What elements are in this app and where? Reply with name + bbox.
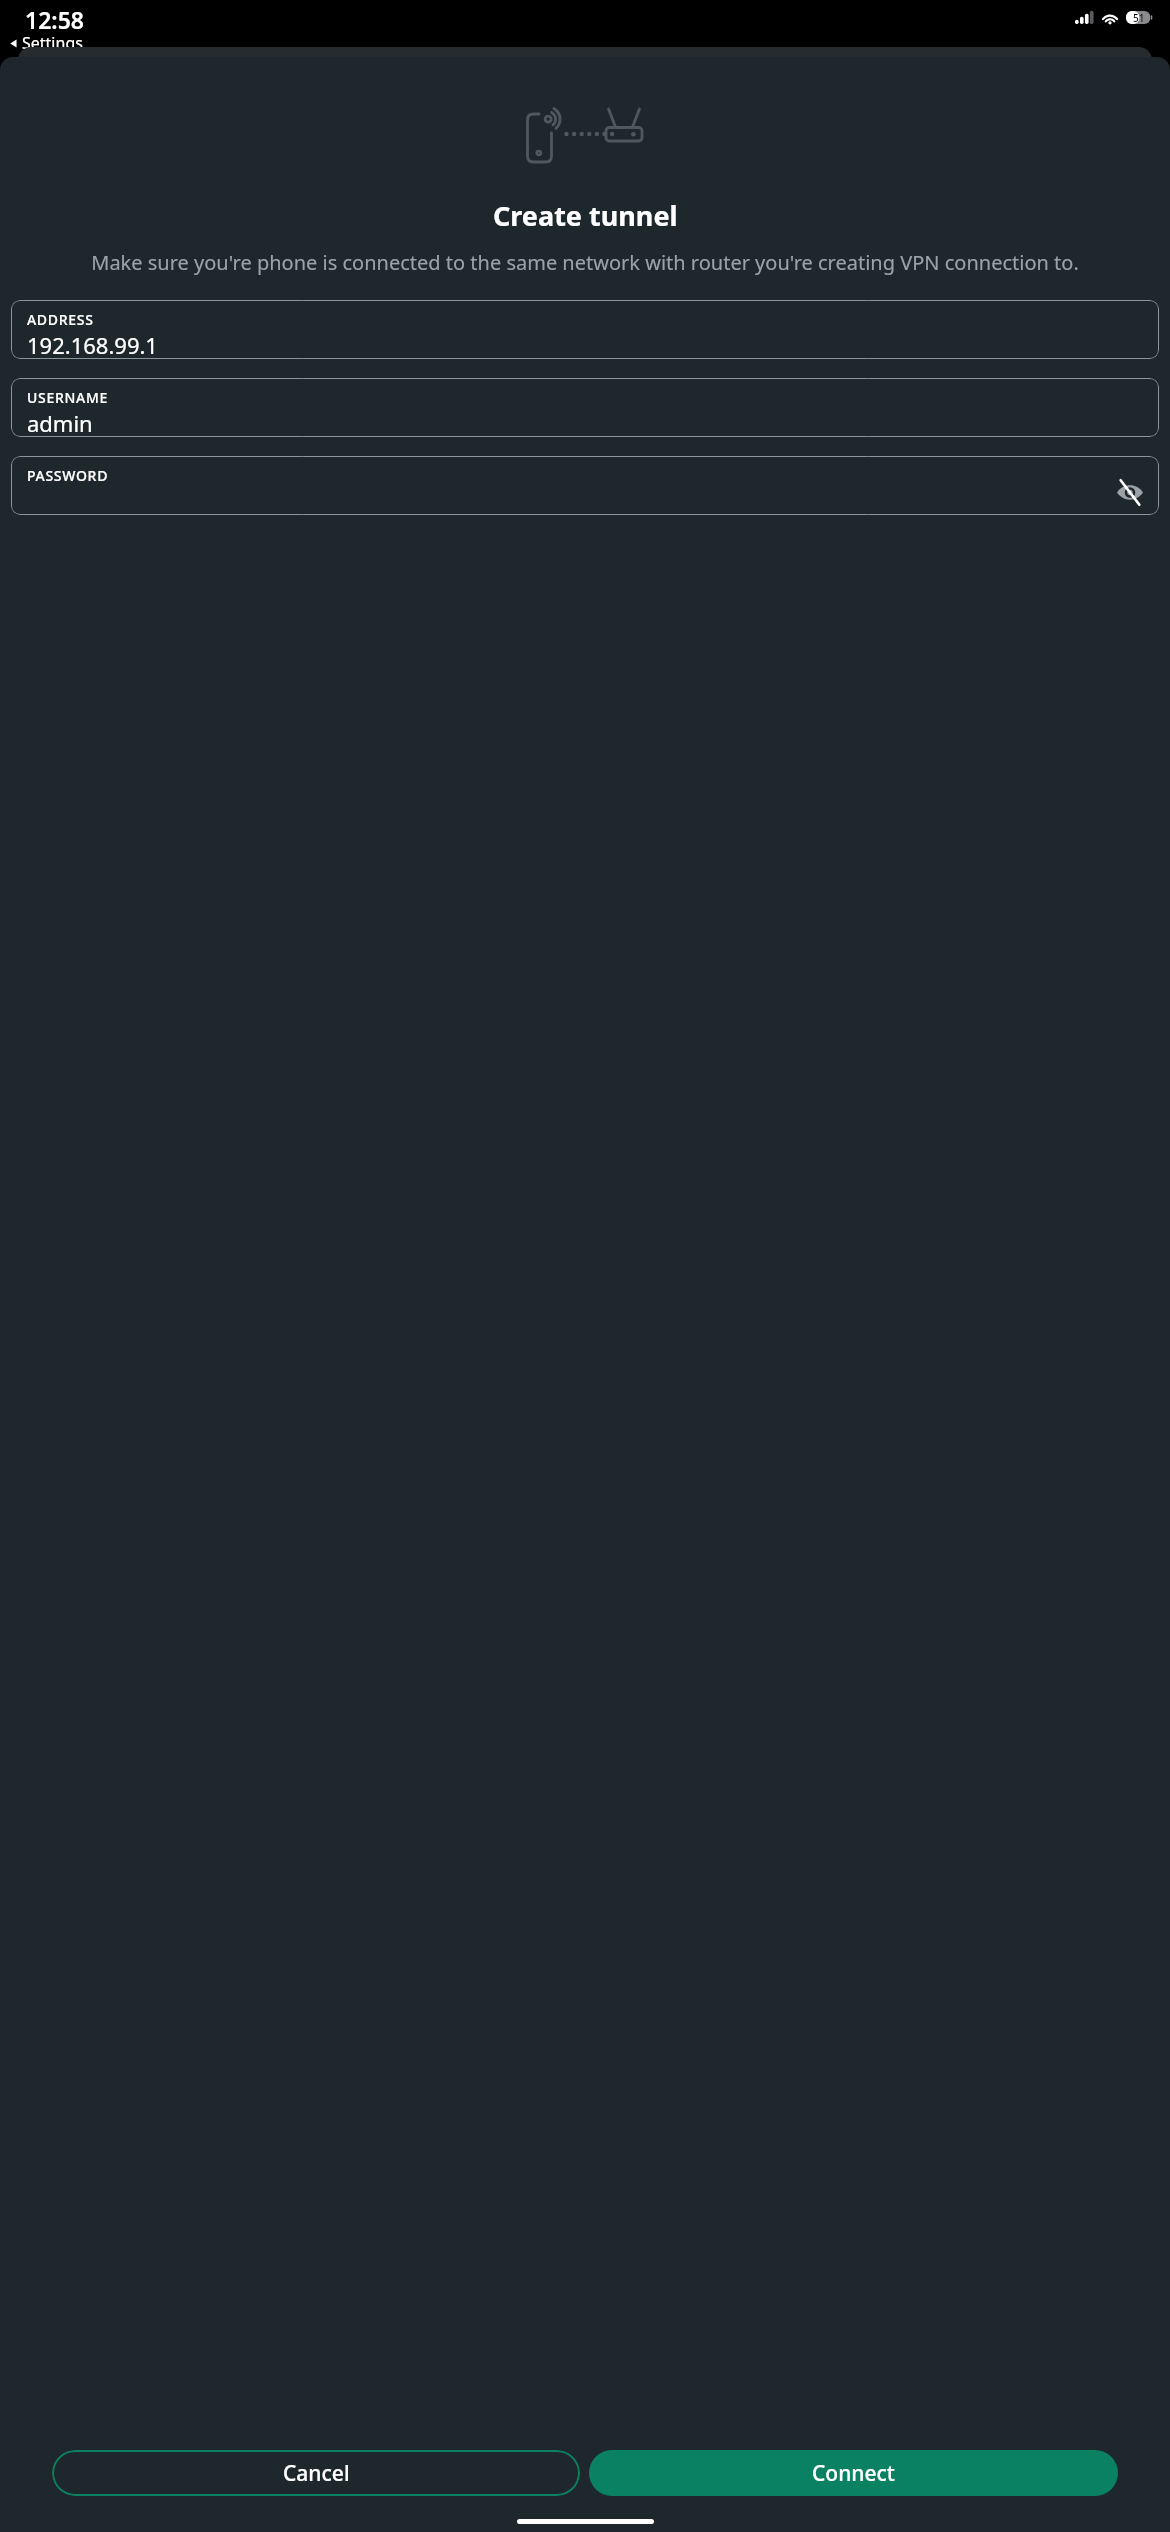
staticText: Settings <box>22 32 83 54</box>
button[interactable]: PASSWORD <box>11 456 1159 515</box>
button[interactable]: Settings <box>8 32 83 54</box>
staticText: Create tunnel <box>493 197 678 234</box>
staticText: USERNAME <box>27 388 108 407</box>
button[interactable]: Cancel <box>52 2450 580 2496</box>
staticText: admin <box>27 408 93 437</box>
staticText: PASSWORD <box>27 466 109 485</box>
button[interactable]: Show password <box>1115 477 1145 507</box>
staticText: Cancel <box>283 2459 350 2488</box>
staticText: 51 <box>1133 11 1145 24</box>
staticText: Make sure you're phone is connected to t… <box>91 249 1079 276</box>
staticText: Connect <box>812 2459 895 2488</box>
button[interactable]: USERNAME <box>11 378 1159 437</box>
staticText: 12:58 <box>25 4 84 35</box>
staticText: ADDRESS <box>27 310 94 329</box>
button[interactable]: Connect <box>589 2450 1118 2496</box>
staticText: 192.168.99.1 <box>27 330 158 359</box>
button[interactable]: ADDRESS <box>11 300 1159 359</box>
